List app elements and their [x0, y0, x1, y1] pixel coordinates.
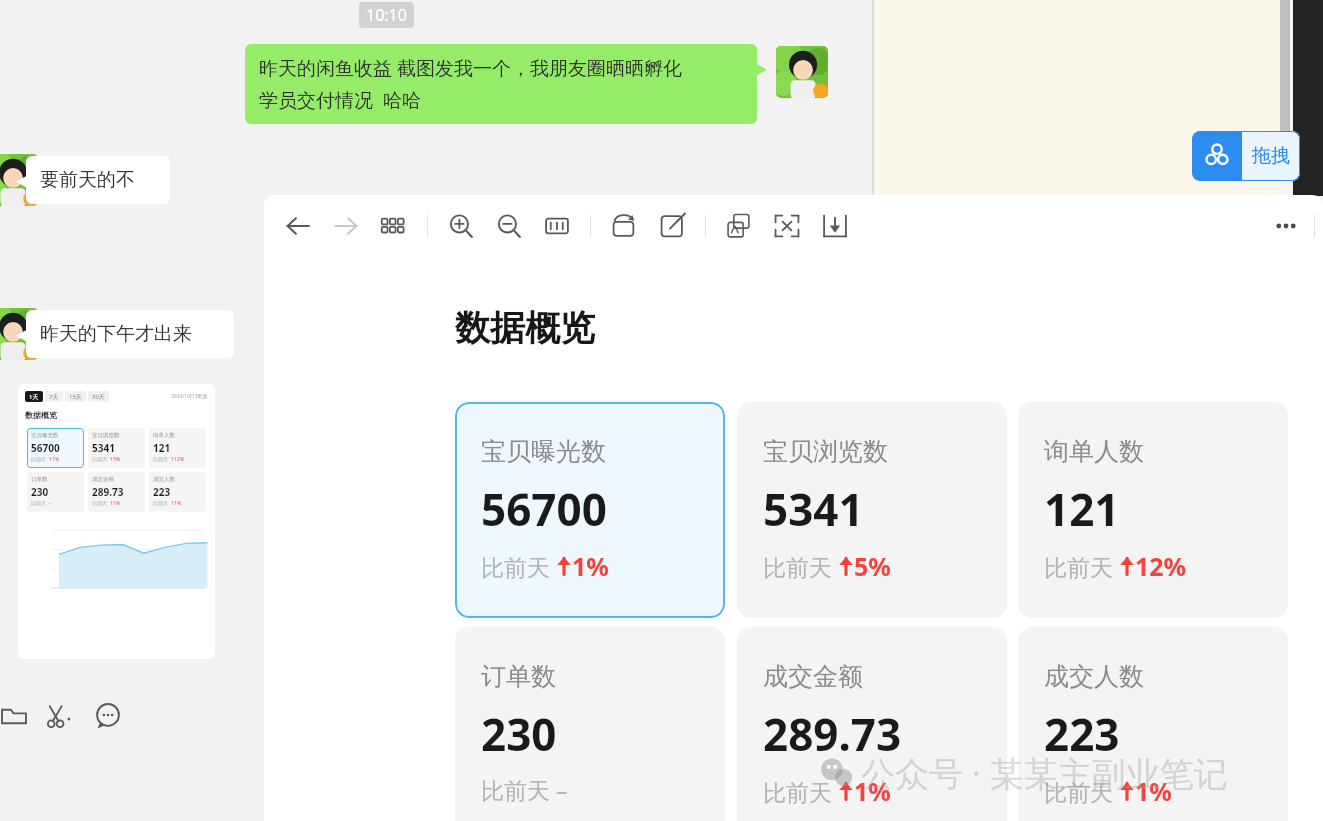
button[interactable]: [776, 46, 828, 98]
staticText: –: [48, 500, 51, 507]
button[interactable]: 昨天的下午才出来: [26, 310, 234, 358]
staticText: 223: [153, 485, 171, 499]
staticText: 询单人数: [153, 432, 175, 439]
button[interactable]: Files: [0, 694, 36, 738]
button[interactable]: Rotate: [600, 202, 648, 250]
staticText: ↑1%: [170, 500, 182, 507]
staticText: 5%: [854, 549, 891, 583]
staticText: 成交金额: [763, 661, 863, 692]
staticText: 56700: [481, 479, 607, 539]
staticText: 230: [481, 704, 557, 764]
staticText: 比前天: [92, 456, 109, 463]
button[interactable]: Save: [811, 202, 859, 250]
staticText: 昨天的下午才出来: [40, 322, 192, 346]
button[interactable]: Zoom out: [485, 202, 533, 250]
staticText: 1%: [1135, 774, 1172, 808]
staticText: 比前天: [481, 774, 556, 805]
staticText: 成交金额: [92, 476, 114, 483]
staticText: –: [556, 774, 568, 805]
staticText: 比前天: [481, 551, 556, 582]
staticText: 比前天: [1044, 776, 1119, 807]
staticText: 数据概览: [25, 410, 57, 420]
staticText: 比前天: [763, 776, 838, 807]
staticText: 要前天的不: [40, 168, 135, 192]
button[interactable]: Forward: [322, 202, 370, 250]
button[interactable]: Chat history: [86, 694, 130, 738]
staticText: 比前天: [763, 551, 838, 582]
staticText: 15天: [69, 393, 82, 401]
staticText: 7天: [49, 393, 59, 401]
staticText: 121: [153, 441, 171, 455]
staticText: 289.73: [92, 485, 124, 499]
button[interactable]: [0, 308, 38, 360]
button[interactable]: 拖拽: [1192, 131, 1300, 181]
staticText: 5341: [763, 479, 864, 539]
staticText: 昨天的闲鱼收益 截图发我一个，我朋友圈晒晒孵化 学员交付情况 哈哈: [259, 55, 682, 112]
staticText: 1天: [29, 393, 39, 401]
button[interactable]: 成交人数: [1018, 627, 1288, 821]
button[interactable]: 宝贝曝光数: [455, 402, 725, 618]
staticText: 2024/10/13更新: [171, 393, 208, 400]
staticText: 比前天: [92, 500, 109, 507]
button[interactable]: [874, 0, 1293, 196]
staticText: 比前天: [31, 456, 48, 463]
staticText: 订单数: [481, 661, 556, 692]
staticText: 30天: [92, 393, 105, 401]
staticText: 询单人数: [1044, 436, 1144, 467]
staticText: 订单数: [31, 476, 48, 483]
button[interactable]: [0, 154, 38, 206]
button[interactable]: 昨天的闲鱼收益 截图发我一个，我朋友圈晒晒孵化 学员交付情况 哈哈: [245, 44, 757, 124]
staticText: 230: [31, 485, 49, 499]
staticText: 宝贝曝光数: [481, 436, 606, 467]
staticText: 比前天: [153, 456, 170, 463]
staticText: ↑5%: [109, 456, 121, 463]
staticText: 宝贝浏览数: [92, 432, 120, 439]
staticText: 1%: [854, 774, 891, 808]
button[interactable]: Screenshot: [36, 694, 80, 738]
button[interactable]: More: [1264, 204, 1308, 248]
staticText: 5341: [92, 441, 115, 455]
staticText: 10:10: [366, 4, 407, 26]
staticText: 223: [1044, 704, 1120, 764]
staticText: 56700: [31, 441, 60, 455]
staticText: 12%: [1135, 549, 1187, 583]
staticText: 比前天: [153, 500, 170, 507]
staticText: 比前天: [1044, 551, 1119, 582]
button[interactable]: Actual size: [533, 202, 581, 250]
staticText: ↑12%: [170, 456, 185, 463]
button[interactable]: Translate: [715, 202, 763, 250]
staticText: 成交人数: [153, 476, 175, 483]
button[interactable]: Zoom in: [437, 202, 485, 250]
button[interactable]: 订单数: [455, 627, 725, 821]
staticText: 成交人数: [1044, 661, 1144, 692]
button[interactable]: 要前天的不: [26, 156, 170, 204]
staticText: 数据概览: [455, 306, 595, 350]
staticText: ↑1%: [109, 500, 121, 507]
staticText: 拖拽: [1252, 144, 1290, 168]
button[interactable]: 1天: [18, 384, 215, 659]
button[interactable]: Extract text: [763, 202, 811, 250]
button[interactable]: 成交金额: [737, 627, 1007, 821]
staticText: ↑1%: [48, 456, 60, 463]
button[interactable]: 宝贝浏览数: [737, 402, 1007, 618]
button[interactable]: Back: [274, 202, 322, 250]
staticText: 宝贝浏览数: [763, 436, 888, 467]
staticText: 121: [1044, 479, 1120, 539]
button[interactable]: 询单人数: [1018, 402, 1288, 618]
staticText: 宝贝曝光数: [31, 432, 59, 439]
staticText: 比前天: [31, 500, 48, 507]
staticText: 1%: [572, 549, 609, 583]
button[interactable]: Edit: [648, 202, 696, 250]
staticText: 公众号 · 某某主副业笔记: [861, 750, 1228, 796]
staticText: 289.73: [763, 704, 902, 764]
button[interactable]: Grid view: [370, 202, 418, 250]
